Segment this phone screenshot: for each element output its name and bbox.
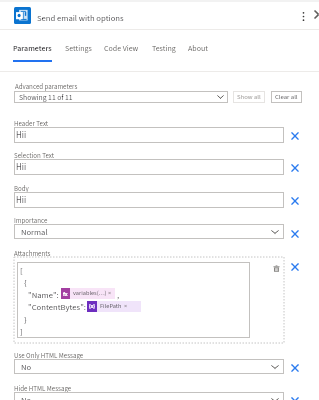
button[interactable]: Remove Hide HTML Message [288, 394, 302, 400]
button[interactable]: Clear all [271, 91, 302, 103]
staticText: Body [14, 184, 29, 194]
staticText: Clear all [275, 92, 298, 102]
button[interactable]: Code View [104, 42, 139, 54]
button[interactable]: Remove Attachments [288, 260, 302, 274]
staticText: "Name": [28, 289, 59, 301]
staticText: × [124, 302, 128, 311]
staticText: {x} [89, 303, 95, 310]
staticText: Testing [152, 43, 176, 54]
button[interactable]: Normal [14, 224, 284, 239]
staticText: Header Text [14, 119, 49, 129]
button[interactable]: Remove Importance [288, 227, 302, 241]
button[interactable]: Showing 11 of 11 [14, 91, 228, 103]
staticText: Hii [16, 161, 27, 174]
button[interactable]: Remove Header Text [288, 129, 302, 143]
staticText: No [21, 361, 32, 373]
staticText: Use Only HTML Message [14, 351, 84, 361]
staticText: Showing 11 of 11 [19, 92, 73, 103]
button[interactable]: Expand [313, 10, 319, 20]
button[interactable]: Show all [233, 91, 265, 103]
button[interactable]: More commands [296, 9, 310, 23]
button[interactable]: No [14, 392, 284, 400]
button[interactable]: Testing [152, 42, 176, 54]
staticText: Selection Text [14, 151, 55, 161]
staticText: FilePath [100, 302, 122, 311]
button[interactable]: Parameters [13, 42, 52, 54]
staticText: Show all [237, 92, 261, 102]
staticText: { [24, 277, 27, 289]
staticText: "ContentBytes": [28, 301, 86, 313]
staticText: Normal [21, 226, 48, 238]
staticText: Advanced parameters [15, 82, 78, 92]
staticText: , [117, 289, 120, 301]
staticText: } [24, 314, 27, 326]
staticText: Importance [14, 216, 48, 226]
button[interactable]: Remove Body [288, 194, 302, 208]
button[interactable]: Hii [14, 159, 284, 175]
staticText: Parameters [13, 43, 52, 54]
button[interactable]: Remove Use Only HTML Message [288, 361, 302, 375]
staticText: Hii [16, 129, 27, 142]
button[interactable]: Hii [14, 127, 284, 143]
button[interactable]: Remove Selection Text [288, 161, 302, 175]
button[interactable]: Hii [14, 192, 284, 208]
staticText: × [108, 289, 112, 298]
staticText: Attachments [14, 249, 51, 259]
staticText: Send email with options [37, 12, 124, 24]
staticText: Hii [16, 194, 27, 207]
button[interactable]: Attachments editor [14, 257, 284, 343]
button[interactable]: fx [61, 288, 115, 299]
button[interactable]: Settings [65, 42, 92, 54]
staticText: fx [63, 290, 68, 298]
button[interactable]: About [188, 42, 209, 54]
staticText: About [188, 43, 208, 54]
button[interactable]: Outlook connector [14, 7, 31, 24]
staticText: No [21, 394, 32, 400]
button[interactable]: No [14, 359, 284, 374]
button[interactable]: Delete attachment [270, 262, 282, 274]
staticText: [ [20, 265, 23, 277]
staticText: variables(…) [73, 289, 107, 298]
button[interactable]: {x} [87, 301, 141, 312]
staticText: Code View [104, 43, 139, 54]
staticText: Settings [65, 43, 92, 54]
staticText: ] [20, 326, 23, 338]
staticText: Hide HTML Message [14, 384, 72, 394]
